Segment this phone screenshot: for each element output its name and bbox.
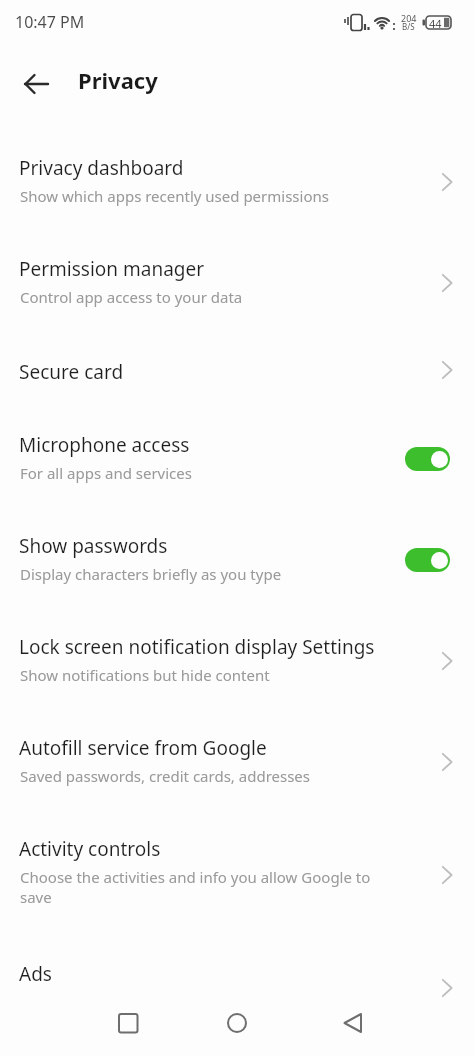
staticText: Choose the activities and info you allow… bbox=[20, 867, 371, 887]
staticText: Autofill service from Google bbox=[19, 735, 267, 761]
staticText: Display characters briefly as you type bbox=[20, 564, 282, 584]
staticText: Ads bbox=[19, 961, 52, 987]
button[interactable] bbox=[24, 74, 50, 94]
staticText: Show which apps recently used permission… bbox=[20, 186, 329, 206]
button[interactable]: Privacy dashboard bbox=[0, 132, 474, 233]
button[interactable] bbox=[405, 447, 450, 471]
button[interactable] bbox=[343, 1013, 363, 1033]
staticText: Privacy dashboard bbox=[19, 155, 184, 181]
staticText: Activity controls bbox=[19, 836, 161, 862]
staticText: Microphone access bbox=[19, 432, 190, 458]
button[interactable] bbox=[227, 1013, 247, 1033]
staticText: 10:47 PM bbox=[15, 11, 85, 33]
button[interactable]: Activity controls bbox=[0, 813, 474, 938]
button[interactable]: Secure card bbox=[0, 336, 474, 409]
staticText: Saved passwords, credit cards, addresses bbox=[20, 766, 310, 786]
staticText: Lock screen notification display Setting… bbox=[19, 634, 375, 660]
button[interactable] bbox=[118, 1013, 138, 1033]
staticText: Privacy bbox=[78, 65, 158, 95]
staticText: B/S bbox=[402, 21, 415, 32]
staticText: 204 bbox=[401, 12, 417, 24]
staticText: Secure card bbox=[19, 359, 124, 385]
staticText: Show notifications but hide content bbox=[20, 665, 270, 685]
button[interactable]: Autofill service from Google bbox=[0, 712, 474, 813]
staticText: 44 bbox=[429, 16, 442, 31]
button[interactable]: Show passwords bbox=[0, 510, 474, 611]
button[interactable]: Microphone access bbox=[0, 409, 474, 510]
button[interactable] bbox=[405, 548, 450, 572]
staticText: Show passwords bbox=[19, 533, 168, 559]
staticText: save bbox=[20, 887, 52, 907]
staticText: Permission manager bbox=[19, 256, 205, 282]
button[interactable]: Ads bbox=[0, 938, 474, 1028]
button[interactable]: Lock screen notification display Setting… bbox=[0, 611, 474, 712]
staticText: Control app access to your data bbox=[20, 287, 243, 307]
button[interactable]: Permission manager bbox=[0, 233, 474, 336]
staticText: For all apps and services bbox=[20, 463, 192, 483]
